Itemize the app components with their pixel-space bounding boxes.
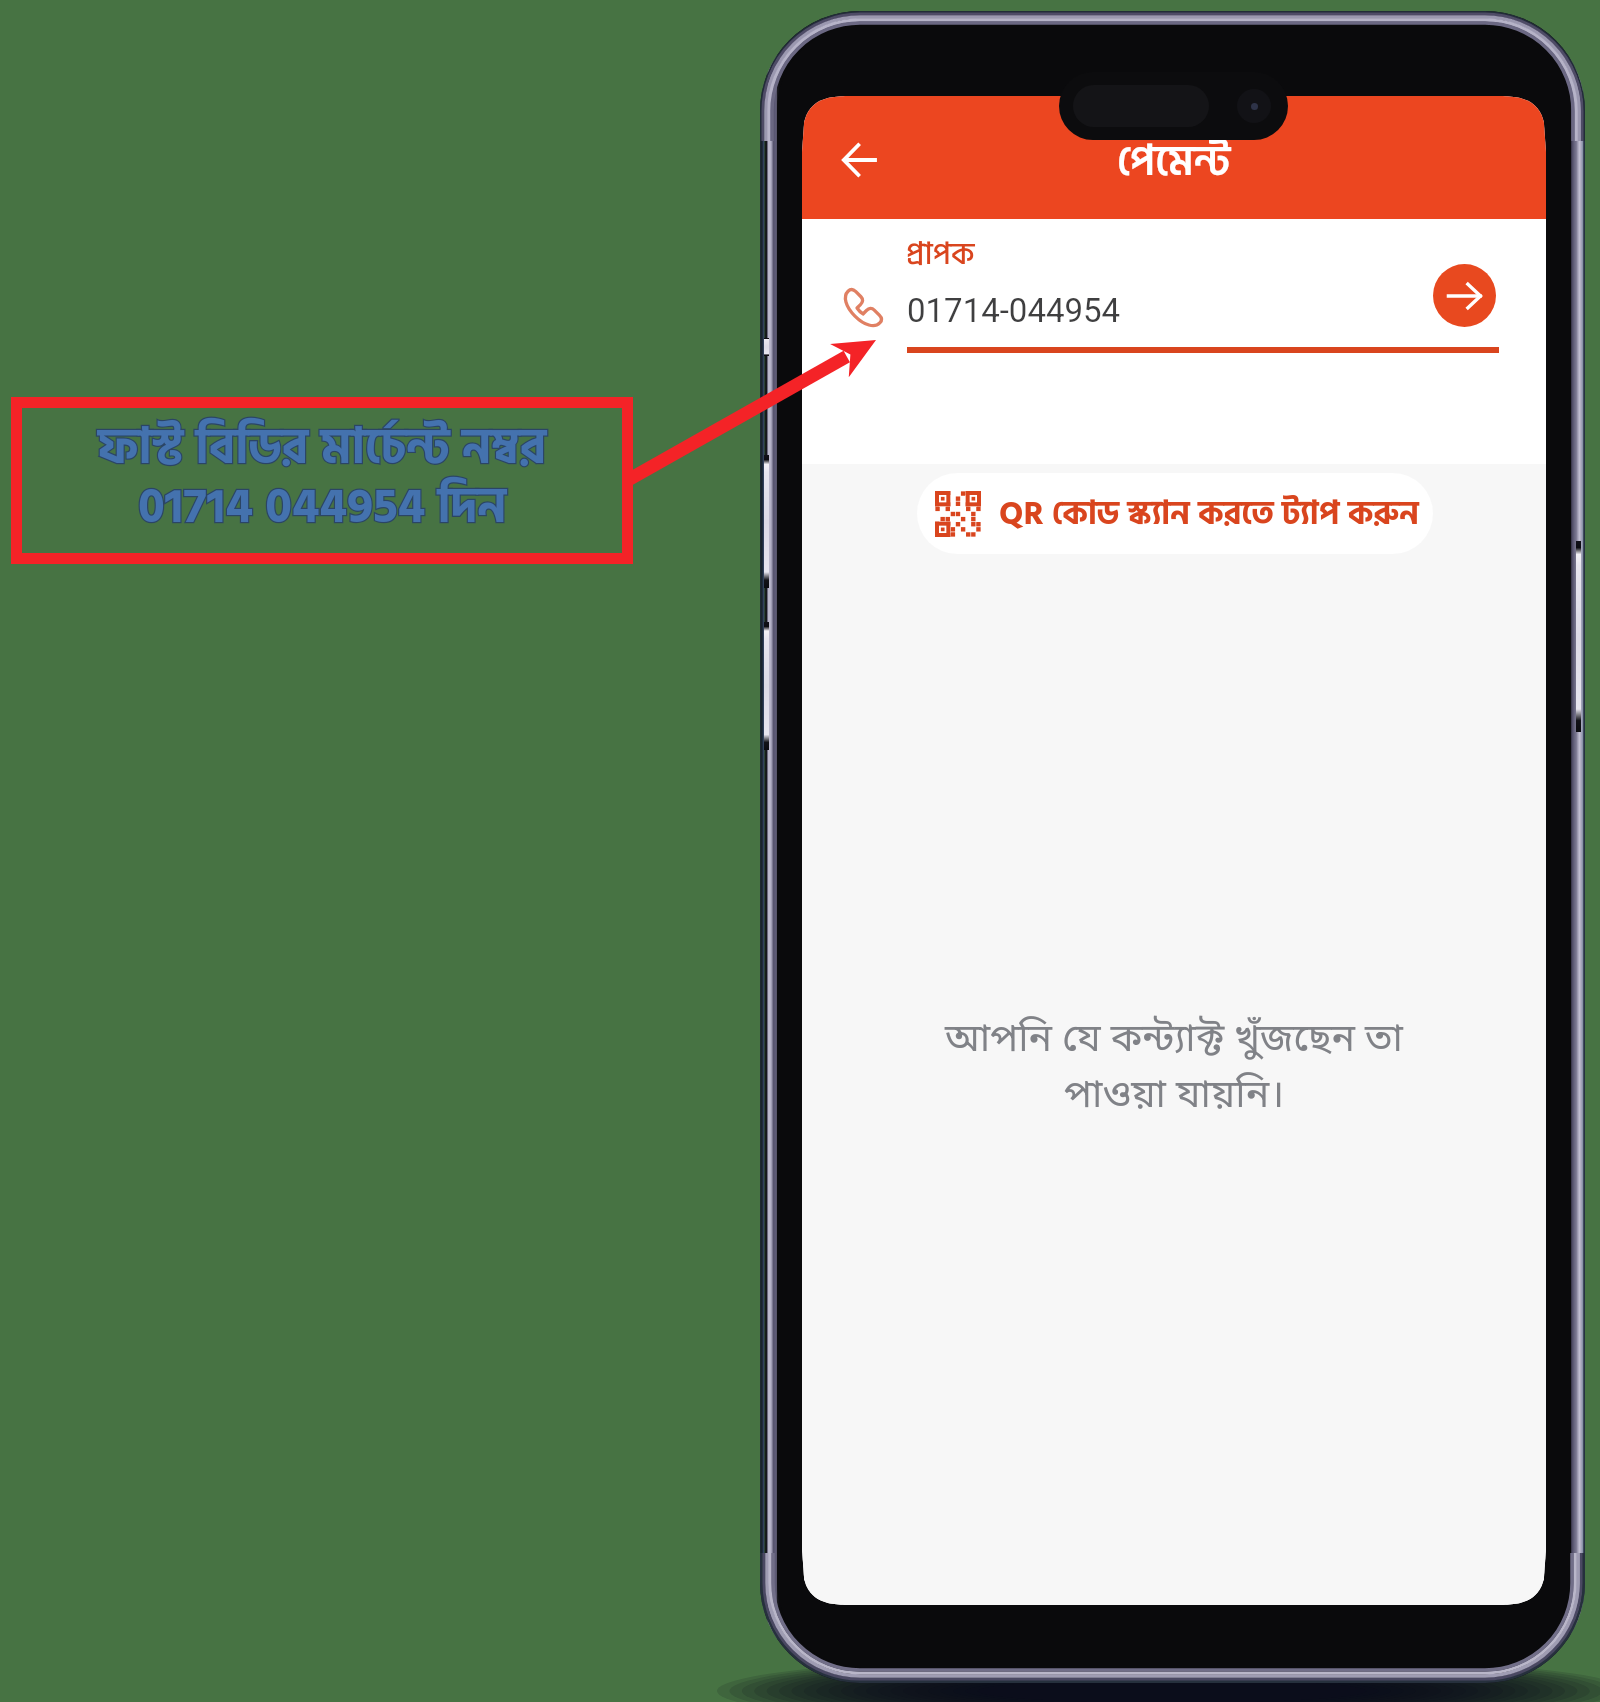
staticText: ফাস্ট বিডির মার্চেন্ট নম্বর 01714 044954… — [11, 408, 633, 547]
staticText: পেমেন্ট — [1117, 128, 1231, 196]
staticText: 01714-044954 — [907, 291, 1121, 330]
button[interactable]: 01714-044954 — [832, 275, 1504, 355]
button[interactable]: Back — [825, 119, 895, 189]
staticText: আপনি যে কন্ট্যাক্ট খুঁজছেন তা পাওয়া যায… — [802, 1015, 1546, 1123]
button[interactable]: Proceed — [1433, 264, 1496, 327]
staticText: প্রাপক — [906, 229, 975, 279]
button[interactable]: QR কোড স্ক্যান করতে ট্যাপ করুন — [917, 473, 1433, 554]
staticText: QR কোড স্ক্যান করতে ট্যাপ করুন — [999, 487, 1419, 540]
staticText: ফাস্ট বিডির মার্চেন্ট নম্বর 01714 044954… — [11, 408, 633, 547]
